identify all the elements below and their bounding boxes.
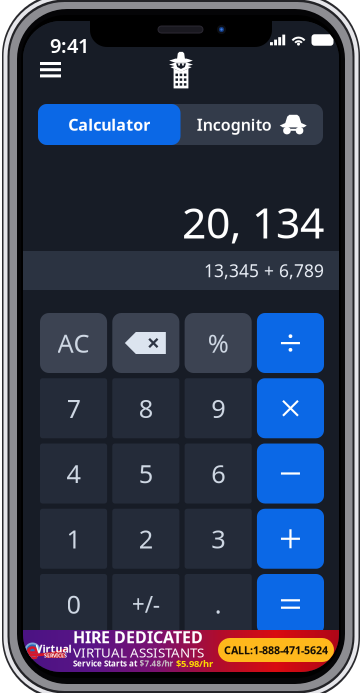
button[interactable]: 6 — [185, 443, 252, 503]
button[interactable]: Calculator — [38, 104, 180, 145]
staticText: $5.98/hr — [176, 657, 213, 670]
staticText: 7 — [66, 391, 80, 425]
staticText: Calculator — [68, 114, 150, 135]
staticText: 4 — [66, 457, 80, 490]
button[interactable]: 1 — [40, 509, 107, 569]
button[interactable]: 4 — [40, 443, 107, 503]
staticText: 3 — [211, 522, 225, 555]
staticText: CALL:1-888-471-5624 — [224, 643, 328, 657]
button[interactable]: CALL:1-888-471-5624 — [218, 638, 334, 662]
button[interactable]: Add — [257, 509, 324, 569]
staticText: 6 — [211, 457, 225, 490]
staticText: 20, 134 — [182, 194, 324, 250]
staticText: Service Starts at — [73, 658, 137, 669]
button[interactable]: All clear — [40, 313, 107, 373]
staticText: 13,345 + 6,789 — [204, 259, 324, 282]
staticText: . — [215, 587, 222, 621]
staticText: VIRTUAL ASSISTANTS — [73, 644, 204, 661]
staticText: 2 — [139, 522, 153, 555]
button[interactable]: Multiply — [257, 378, 324, 438]
staticText: $7.48/hr — [139, 658, 173, 669]
button[interactable]: +/- — [112, 574, 179, 634]
button[interactable]: 3 — [185, 509, 252, 569]
staticText: 0 — [66, 587, 80, 621]
staticText: 5 — [139, 457, 153, 490]
staticText: AC — [57, 326, 89, 360]
button[interactable]: 7 — [40, 378, 107, 438]
button[interactable]: Percent — [185, 313, 252, 373]
button[interactable]: Subtract — [257, 443, 324, 503]
button[interactable]: Divide — [257, 313, 324, 373]
staticText: HIRE DEDICATED — [73, 626, 203, 647]
button[interactable]: Incognito — [180, 104, 323, 145]
staticText: 9:41 — [50, 32, 89, 59]
button[interactable]: 9 — [185, 378, 252, 438]
staticText: Virtual — [35, 641, 71, 656]
staticText: 8 — [139, 391, 153, 425]
staticText: 9 — [211, 391, 225, 425]
staticText: e — [25, 635, 39, 665]
button[interactable]: 8 — [112, 378, 179, 438]
staticText: Incognito — [197, 114, 272, 135]
staticText: +/- — [132, 589, 160, 619]
button[interactable]: 5 — [112, 443, 179, 503]
button[interactable]: Equals — [257, 574, 324, 634]
button[interactable]: 0 — [40, 574, 107, 634]
button[interactable]: 2 — [112, 509, 179, 569]
staticText: % — [208, 326, 229, 360]
staticText: SERVICES — [44, 652, 67, 659]
button[interactable]: Menu — [32, 54, 69, 85]
button[interactable]: . — [185, 574, 252, 634]
button[interactable]: Backspace — [112, 313, 179, 373]
staticText: 1 — [66, 522, 80, 555]
